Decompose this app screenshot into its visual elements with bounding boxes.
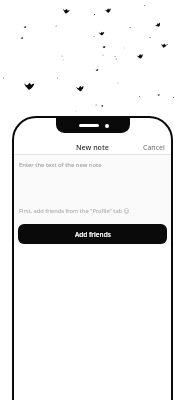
staticText: First, add friends from the "Profile" ta… [19,207,130,215]
button[interactable]: Add friends [18,224,167,244]
button[interactable]: Cancel [143,143,171,154]
staticText: Enter the text of the new note [19,161,102,169]
staticText: Add friends [75,230,111,239]
staticText: Cancel [143,143,165,153]
staticText: New note [76,143,109,153]
